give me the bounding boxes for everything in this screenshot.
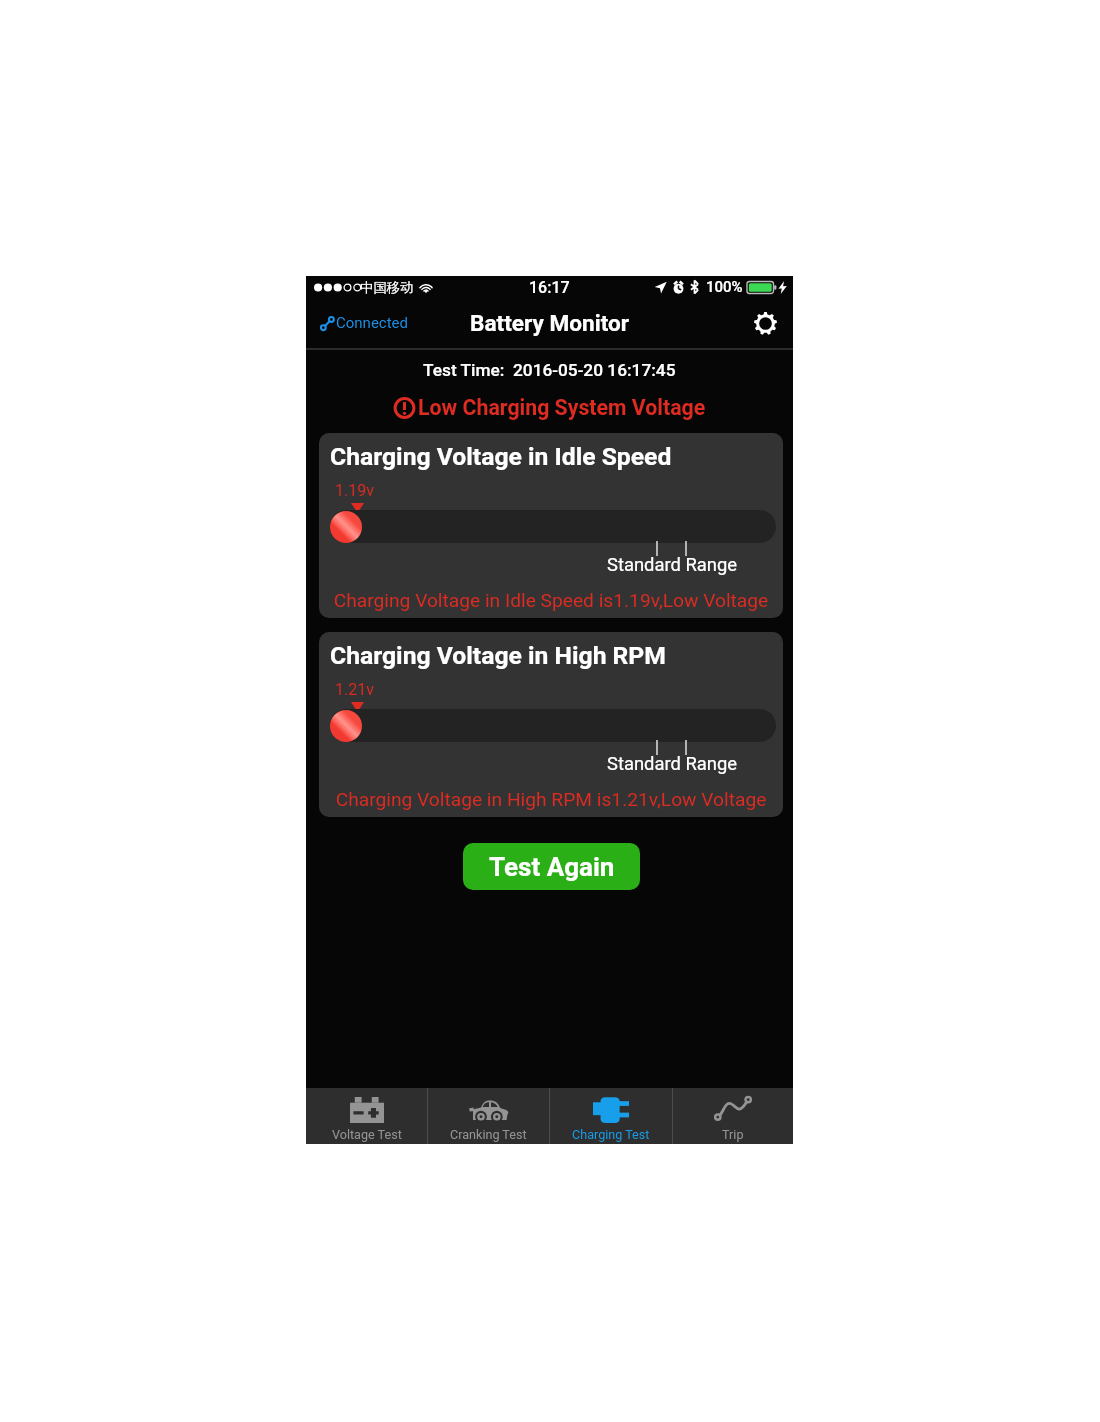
staticText: Charging Voltage in Idle Speed (330, 442, 672, 471)
button[interactable]: Charging Test (550, 1088, 672, 1144)
staticText: Battery Monitor (470, 310, 629, 336)
button[interactable]: Connected (306, 306, 417, 340)
button[interactable]: Test Again (463, 843, 640, 890)
staticText: Test Again (489, 852, 615, 882)
staticText: 100% (706, 278, 743, 296)
staticText: Test Time: 2016-05-20 16:17:45 (423, 360, 676, 380)
button[interactable]: Charging Voltage in Idle Speed (319, 433, 783, 618)
staticText: Charging Voltage in Idle Speed is1.19v,L… (319, 589, 783, 612)
staticText: Charging Voltage in High RPM (330, 641, 666, 670)
button[interactable]: Cranking Test (428, 1088, 549, 1144)
staticText: 中国移动 (360, 279, 414, 296)
staticText: Cranking Test (450, 1127, 527, 1142)
button[interactable]: Settings (754, 312, 793, 335)
staticText: Charging Test (572, 1127, 650, 1142)
staticText: 1.19v (335, 481, 374, 500)
button[interactable]: Voltage Test (306, 1088, 427, 1144)
staticText: Standard Range (319, 554, 737, 576)
staticText: Trip (722, 1127, 744, 1142)
button[interactable]: Charging Voltage in High RPM (319, 632, 783, 817)
staticText: 1.21v (335, 680, 374, 699)
staticText: Low Charging System Voltage (418, 395, 706, 420)
staticText: Charging Voltage in High RPM is1.21v,Low… (319, 788, 783, 811)
staticText: Voltage Test (332, 1127, 402, 1142)
button[interactable]: Trip (673, 1088, 793, 1144)
staticText: Standard Range (319, 753, 737, 775)
staticText: 16:17 (529, 278, 570, 297)
staticText: Connected (336, 314, 409, 332)
